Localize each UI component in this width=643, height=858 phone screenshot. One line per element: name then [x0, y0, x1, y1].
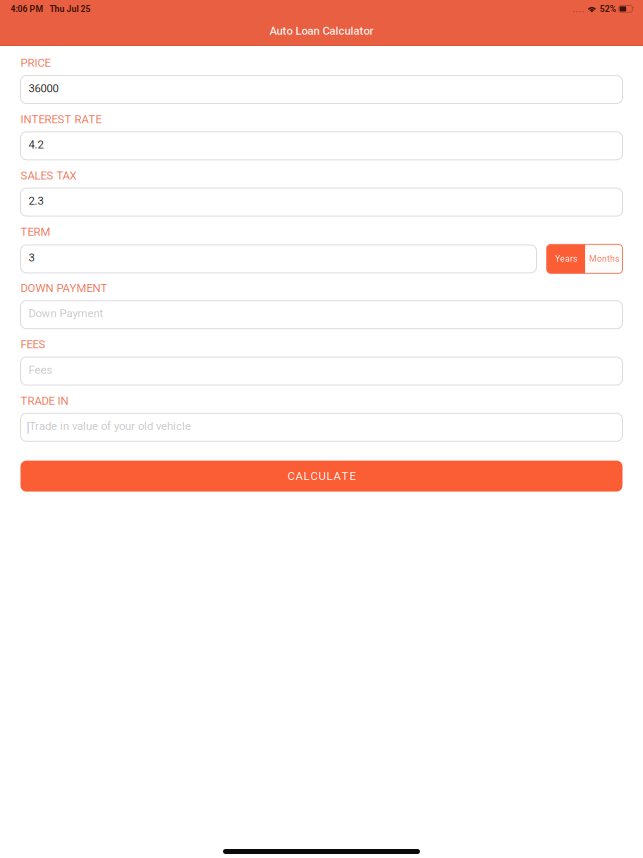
staticText: TERM — [20, 225, 50, 239]
staticText: 36000 — [28, 82, 58, 95]
staticText: Down Payment — [28, 307, 103, 320]
staticText: FEES — [20, 338, 45, 351]
staticText: DOWN PAYMENT — [20, 282, 107, 295]
staticText: 4:06 PM — [10, 4, 43, 14]
staticText: Fees — [28, 363, 52, 376]
staticText: Years — [555, 254, 577, 264]
staticText: INTEREST RATE — [20, 113, 101, 126]
button[interactable]: Months — [585, 244, 622, 273]
staticText: 4.2 — [28, 138, 43, 151]
staticText: Auto Loan Calculator — [269, 24, 373, 38]
staticText: TRADE IN — [20, 394, 68, 407]
button[interactable]: 4.2 — [20, 132, 622, 160]
button[interactable]: Down Payment — [20, 301, 622, 329]
staticText: PRICE — [20, 56, 50, 70]
staticText: SALES TAX — [20, 169, 76, 182]
staticText: 2.3 — [28, 194, 43, 208]
button[interactable]: Trade in value of your old vehicle — [20, 413, 622, 441]
staticText: 3 — [28, 251, 34, 264]
staticText: Months — [589, 254, 619, 264]
button[interactable]: CALCULATE — [20, 461, 622, 492]
staticText: CALCULATE — [287, 469, 355, 483]
staticText: Thu Jul 25 — [49, 4, 90, 14]
button[interactable]: 3 — [20, 245, 536, 273]
button[interactable]: Years — [547, 244, 585, 273]
button[interactable]: Fees — [20, 357, 622, 385]
staticText: Trade in value of your old vehicle — [29, 419, 191, 433]
button[interactable]: 2.3 — [20, 188, 622, 216]
staticText: 52% — [600, 4, 616, 14]
button[interactable]: 36000 — [20, 75, 622, 103]
